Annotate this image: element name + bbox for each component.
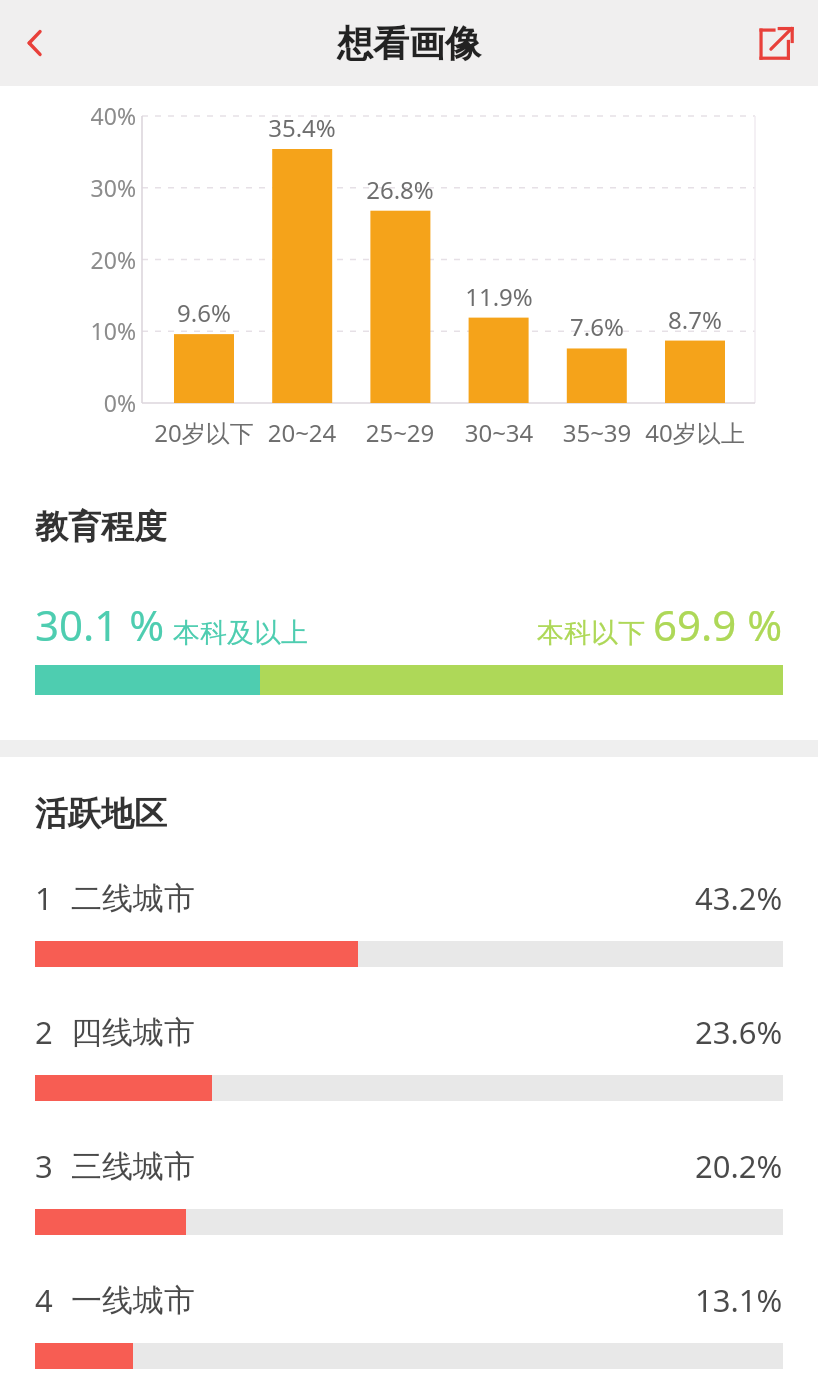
staticText: 4 <box>35 1279 53 1321</box>
staticText: 23.6% <box>695 1011 783 1053</box>
staticText: 2 <box>35 1011 53 1053</box>
button[interactable]: 2 <box>0 1011 818 1101</box>
staticText: 本科以下 <box>537 616 645 650</box>
staticText: 30% <box>36 172 136 203</box>
staticText: 20.2% <box>695 1145 783 1187</box>
staticText: 40% <box>36 100 136 131</box>
button[interactable]: 4 <box>0 1279 818 1369</box>
staticText: 40岁以上 <box>630 416 760 449</box>
staticText: 11.9% <box>439 280 559 313</box>
staticText: 四线城市 <box>71 1013 195 1052</box>
staticText: 7.6% <box>537 310 657 343</box>
staticText: 25~29 <box>335 416 465 449</box>
staticText: 一线城市 <box>71 1281 195 1320</box>
staticText: 20岁以下 <box>139 416 269 449</box>
staticText: 活跃地区 <box>35 793 167 835</box>
staticText: 1 <box>35 877 53 919</box>
button[interactable]: Share <box>746 12 808 74</box>
staticText: 20% <box>36 244 136 275</box>
staticText: 20~24 <box>237 416 367 449</box>
staticText: 三线城市 <box>71 1147 195 1186</box>
staticText: 8.7% <box>635 303 755 336</box>
staticText: 本科及以上 <box>173 616 308 650</box>
staticText: 13.1% <box>695 1279 783 1321</box>
staticText: 30.1 % <box>35 596 165 653</box>
staticText: 10% <box>36 315 136 346</box>
staticText: 0% <box>36 387 136 418</box>
staticText: 35~39 <box>532 416 662 449</box>
button[interactable]: Back <box>6 12 68 74</box>
staticText: 想看画像 <box>337 21 481 66</box>
button[interactable]: 1 <box>0 877 818 967</box>
staticText: 35.4% <box>242 111 362 144</box>
staticText: 9.6% <box>144 296 264 329</box>
staticText: 教育程度 <box>35 506 167 548</box>
button[interactable]: 3 <box>0 1145 818 1235</box>
staticText: 26.8% <box>340 173 460 206</box>
staticText: 69.9 % <box>653 596 783 653</box>
staticText: 3 <box>35 1145 53 1187</box>
staticText: 43.2% <box>695 877 783 919</box>
staticText: 二线城市 <box>71 879 195 918</box>
staticText: 30~34 <box>434 416 564 449</box>
